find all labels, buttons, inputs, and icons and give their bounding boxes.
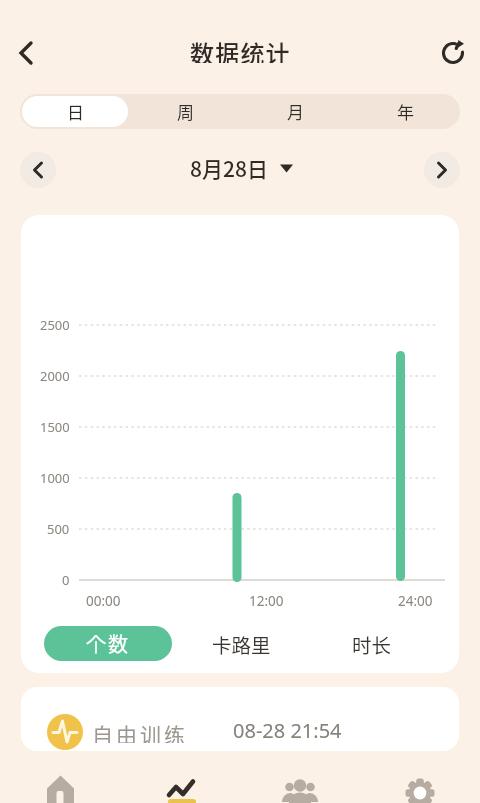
staticText: 08-28 21:54 [233,717,342,741]
button[interactable] [360,765,480,803]
staticText: 00:00 [86,592,121,608]
button[interactable]: 月 [242,96,348,127]
staticText: 个数 [86,629,130,658]
staticText: 时长 [352,630,392,658]
staticText: 自由训练 [92,719,188,743]
button[interactable] [437,37,469,69]
button[interactable] [120,765,240,803]
staticText: 月 [287,99,304,124]
staticText: 1500 [40,418,70,436]
button[interactable]: 年 [352,96,458,127]
button[interactable]: 个数 [44,626,172,661]
button[interactable] [240,765,360,803]
staticText: 12:00 [249,592,284,608]
staticText: 500 [47,520,70,538]
staticText: 24:00 [398,592,433,608]
button[interactable]: 时长 [308,626,436,661]
button[interactable] [10,38,42,68]
button[interactable]: 自由训练 [21,687,459,751]
staticText: 0 [62,571,70,589]
staticText: 卡路里 [212,630,271,658]
button[interactable]: 日 [22,96,128,127]
button[interactable] [424,152,460,188]
staticText: 数据统计 [190,35,291,63]
staticText: 日 [67,99,84,124]
button[interactable]: 8月28日 [179,153,303,183]
staticText: 年 [397,99,414,124]
staticText: 周 [177,99,194,124]
button[interactable]: 卡路里 [177,626,305,661]
staticText: 2000 [40,367,70,385]
staticText: 2500 [40,316,70,334]
staticText: 8月28日 [190,153,268,183]
button[interactable]: 周 [132,96,238,127]
staticText: 1000 [40,469,70,487]
button[interactable] [0,765,120,803]
button[interactable] [20,152,56,188]
